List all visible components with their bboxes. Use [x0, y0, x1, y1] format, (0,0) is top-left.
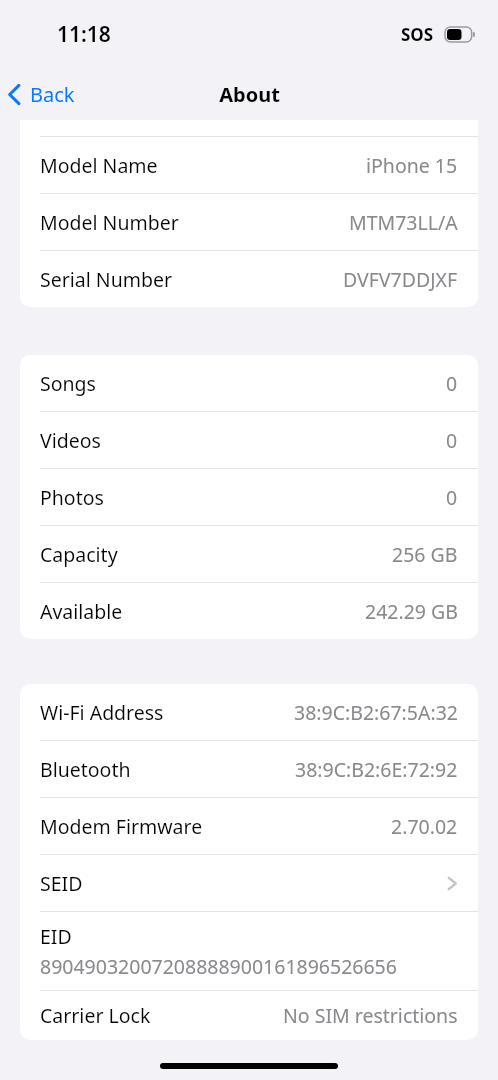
staticText: iPhone 15 — [366, 152, 458, 179]
staticText: Serial Number — [40, 266, 172, 293]
staticText: Carrier Lock — [40, 1002, 151, 1029]
button[interactable]: Model Number — [20, 194, 478, 250]
button[interactable]: Videos — [20, 412, 478, 468]
staticText: Model Number — [40, 209, 179, 236]
staticText: Model Name — [40, 152, 158, 179]
button[interactable]: Available — [20, 583, 478, 639]
button[interactable]: Photos — [20, 469, 478, 525]
button[interactable]: Serial Number — [20, 251, 478, 307]
staticText: Photos — [40, 484, 104, 511]
staticText: DVFV7DDJXF — [343, 266, 458, 293]
staticText: SEID — [40, 870, 83, 897]
staticText: 0 — [446, 427, 458, 454]
button[interactable]: Modem Firmware — [20, 798, 478, 854]
button[interactable]: SEID — [20, 855, 478, 911]
button[interactable]: EID — [20, 912, 478, 990]
staticText: 38:9C:B2:67:5A:32 — [294, 699, 458, 726]
other: Back — [8, 83, 21, 106]
staticText: 0 — [446, 370, 458, 397]
button[interactable]: Wi-Fi Address — [20, 684, 478, 740]
staticText: EID — [40, 923, 72, 950]
staticText: Capacity — [40, 541, 118, 568]
button[interactable]: Back — [0, 75, 89, 114]
button[interactable]: Capacity — [20, 526, 478, 582]
staticText: 242.29 GB — [365, 598, 458, 625]
staticText: SOS — [401, 23, 434, 46]
staticText: Bluetooth — [40, 756, 131, 783]
staticText: 89049032007208888900161896526656 — [40, 953, 397, 980]
staticText: 2.70.02 — [391, 813, 458, 840]
staticText: About — [219, 81, 280, 108]
staticText: MTM73LL/A — [349, 209, 458, 236]
staticText: Modem Firmware — [40, 813, 203, 840]
button[interactable]: Model Name — [20, 137, 478, 193]
button[interactable]: Carrier Lock — [20, 991, 478, 1040]
staticText: Songs — [40, 370, 96, 397]
button[interactable]: Songs — [20, 355, 478, 411]
staticText: Wi-Fi Address — [40, 699, 164, 726]
staticText: Available — [40, 598, 123, 625]
staticText: 11:18 — [57, 20, 111, 49]
button[interactable]: Bluetooth — [20, 741, 478, 797]
staticText: 0 — [446, 484, 458, 511]
staticText: No SIM restrictions — [283, 1002, 458, 1029]
staticText: 256 GB — [392, 541, 458, 568]
staticText: Back — [30, 81, 75, 108]
staticText: 38:9C:B2:6E:72:92 — [295, 756, 458, 783]
staticText: Videos — [40, 427, 101, 454]
